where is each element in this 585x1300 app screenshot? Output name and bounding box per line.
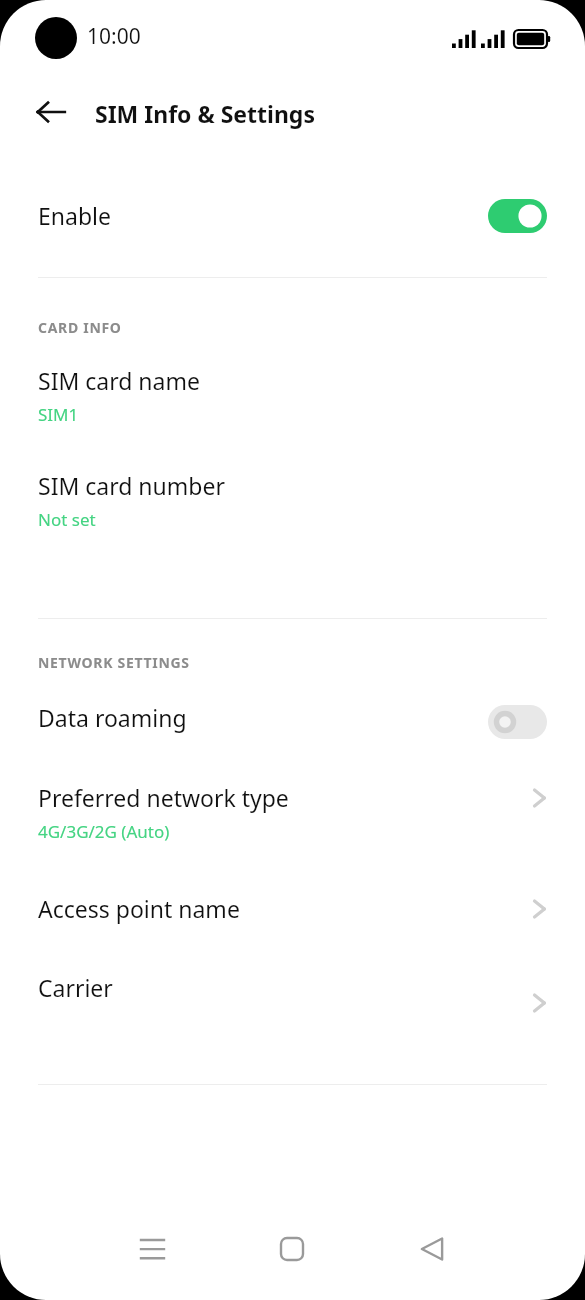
button[interactable]: Carrier (0, 972, 585, 1061)
staticText: Access point name (38, 893, 240, 924)
button[interactable]: Back (402, 1219, 462, 1279)
staticText: SIM card name (38, 365, 200, 396)
button[interactable]: SIM card name (0, 365, 585, 470)
staticText: SIM card number (38, 470, 225, 501)
button[interactable]: Recent apps (122, 1219, 182, 1279)
button[interactable]: Home (262, 1219, 322, 1279)
staticText: Carrier (38, 972, 113, 1003)
staticText: CARD INFO (38, 318, 122, 337)
staticText: 4G/3G/2G (Auto) (38, 820, 170, 843)
staticText: Enable (38, 200, 111, 231)
staticText: Not set (38, 508, 96, 531)
staticText: NETWORK SETTINGS (38, 653, 190, 672)
staticText: Data roaming (38, 702, 187, 733)
button[interactable]: SIM card number (0, 470, 585, 575)
staticText: SIM Info & Settings (95, 98, 315, 129)
button[interactable]: Back (25, 86, 77, 138)
staticText: Preferred network type (38, 782, 289, 813)
button[interactable]: Enable (0, 156, 585, 277)
button[interactable]: Preferred network type (0, 782, 585, 893)
staticText: 10:00 (87, 22, 141, 51)
staticText: SIM1 (38, 403, 79, 426)
button[interactable]: Access point name (0, 893, 585, 972)
button[interactable]: Data roaming (0, 702, 585, 782)
